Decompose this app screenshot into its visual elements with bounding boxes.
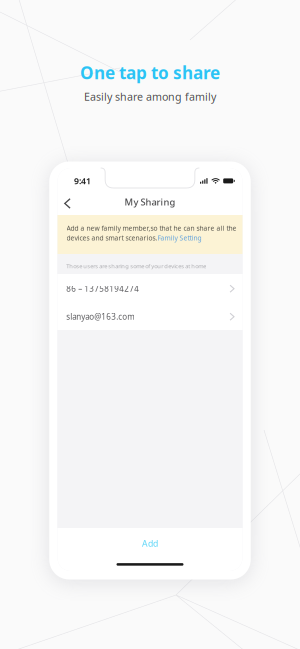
button[interactable]: Back: [64, 191, 84, 215]
staticText: slanyao@163.com: [66, 311, 134, 322]
staticText: Those users are sharing some of your dev…: [66, 262, 206, 270]
staticText: devices and smart scenarios.: [66, 233, 157, 242]
staticText: Add: [142, 538, 158, 549]
button[interactable]: slanyao@163.com: [57, 302, 242, 330]
staticText: 9:41: [74, 175, 91, 187]
staticText: Add a new family member,so that he can s…: [66, 223, 236, 233]
staticText: One tap to share: [80, 61, 220, 84]
staticText: My Sharing: [124, 195, 175, 208]
staticText: Easily share among family: [84, 89, 216, 104]
staticText: 86 – 13758194274: [66, 283, 139, 294]
button[interactable]: 86 – 13758194274: [57, 274, 242, 302]
button[interactable]: Add: [57, 531, 242, 556]
staticText: Family Setting: [157, 233, 201, 242]
